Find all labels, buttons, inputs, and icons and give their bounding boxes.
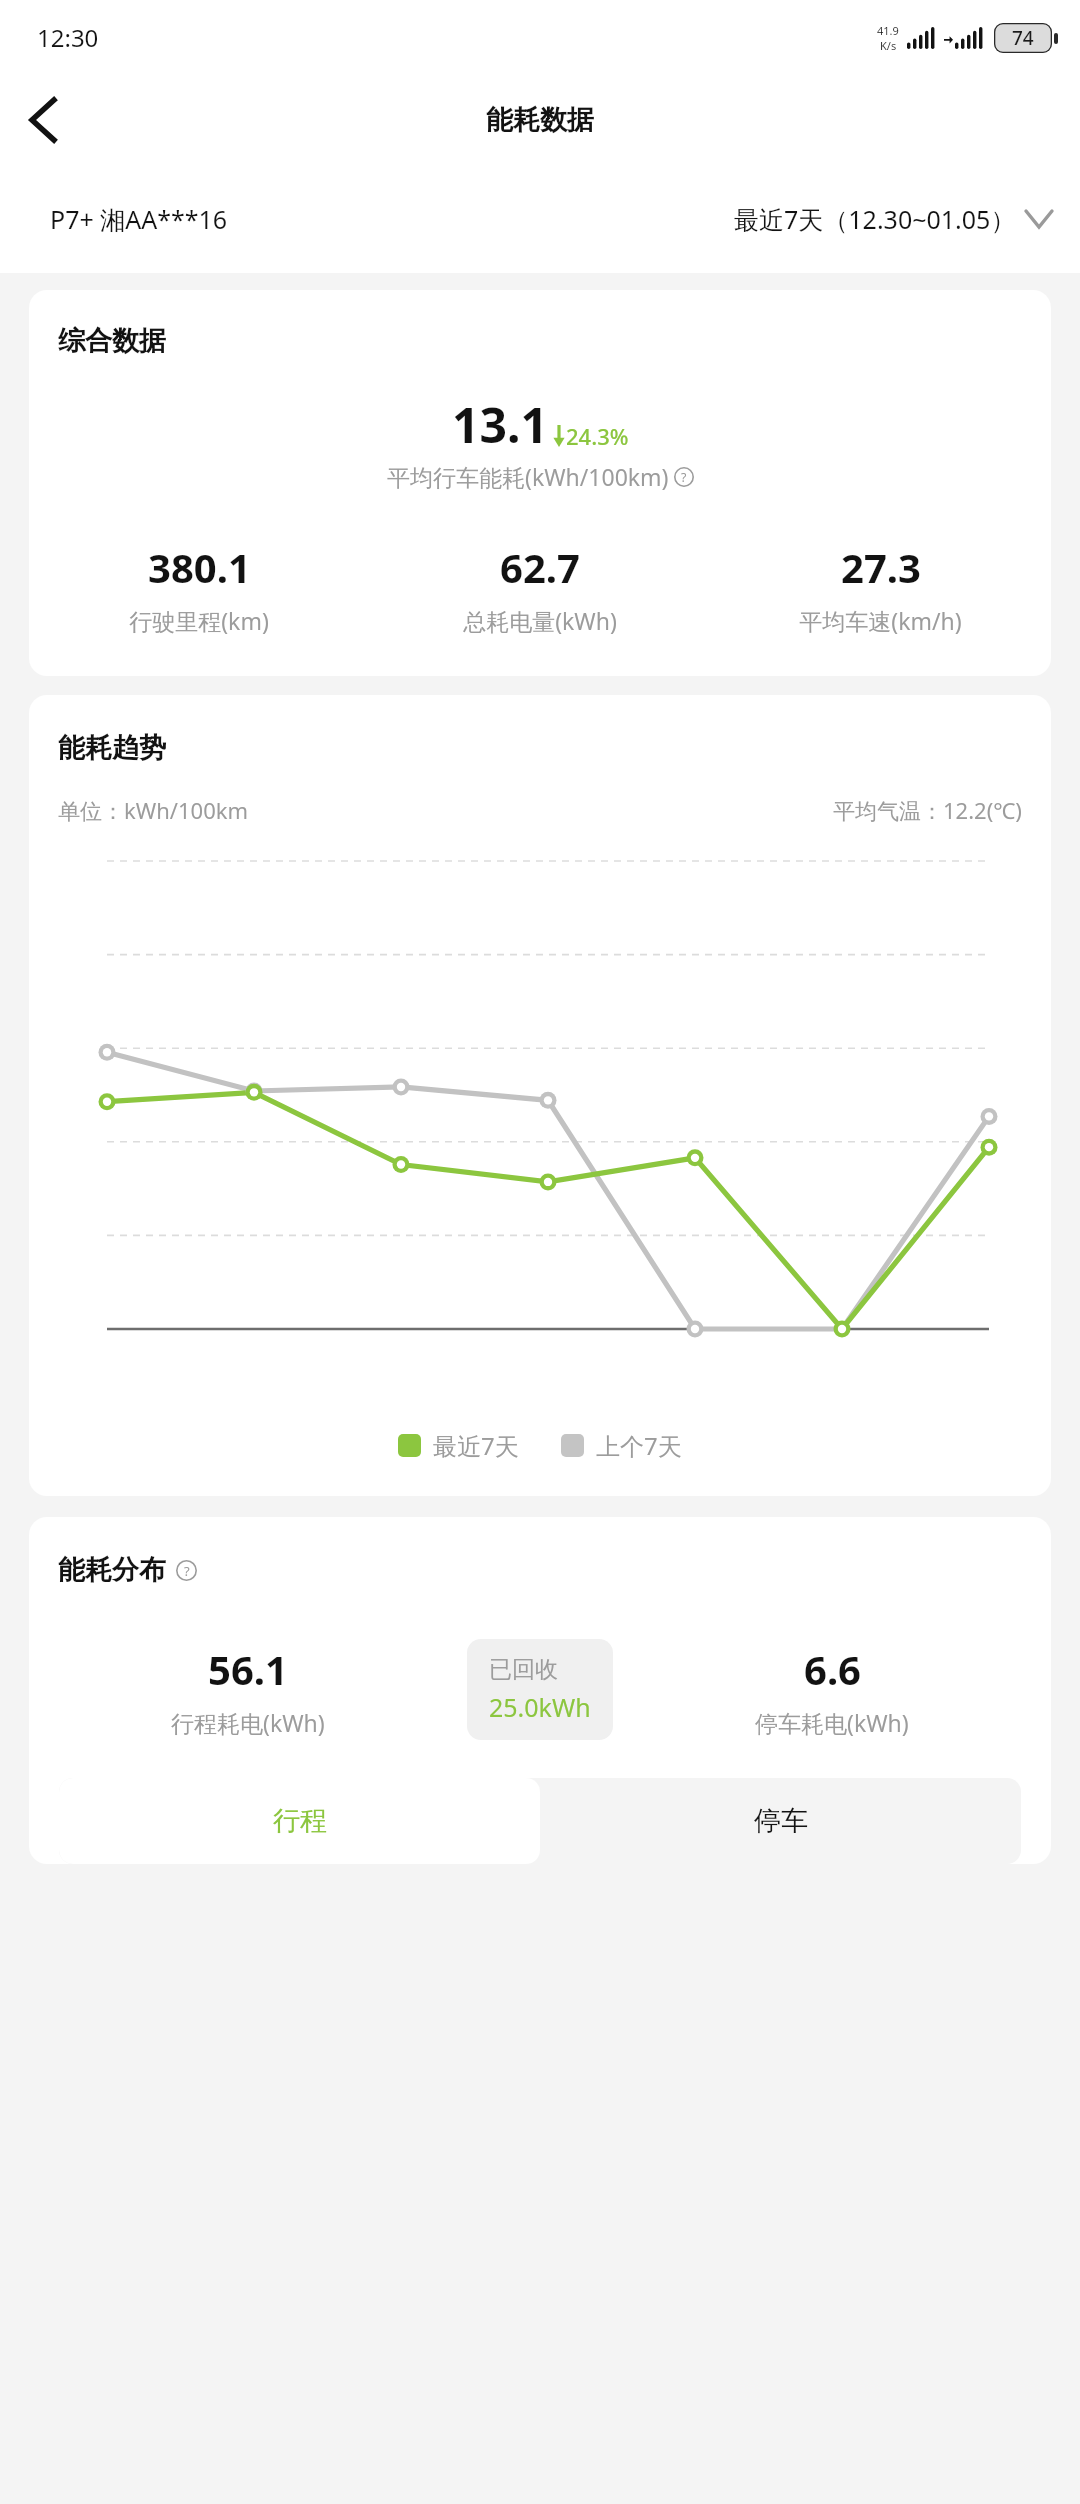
staticText: 平均气温：12.2(℃) — [833, 795, 1022, 825]
staticText: 平均车速(km/h) — [799, 605, 962, 636]
staticText: 平均行车能耗(kWh/100km) — [387, 461, 669, 492]
staticText: ? — [681, 469, 687, 486]
button[interactable]: 行程 — [59, 1778, 540, 1864]
staticText: 行程耗电(kWh) — [171, 1707, 325, 1738]
staticText: 最近7天（12.30~01.05） — [734, 202, 1016, 236]
staticText: 12:30 — [37, 21, 99, 54]
button[interactable]: 上个7天 — [561, 1429, 682, 1462]
staticText: 62.7 — [500, 540, 580, 594]
staticText: 停车 — [754, 1804, 808, 1838]
staticText: 总耗电量(kWh) — [463, 605, 617, 636]
staticText: 56.1 — [208, 1642, 288, 1696]
button[interactable]: 最近7天（12.30~01.05） — [734, 202, 1052, 236]
button[interactable]: 停车 — [540, 1778, 1021, 1864]
staticText: ? — [184, 1562, 190, 1580]
staticText: 27.3 — [841, 540, 921, 594]
staticText: K/s — [880, 38, 897, 53]
staticText: 6.6 — [804, 1642, 861, 1696]
staticText: 单位：kWh/100km — [58, 795, 249, 825]
staticText: 13.1 — [452, 392, 548, 457]
staticText: 24.3% — [566, 421, 629, 451]
button[interactable]: Back — [0, 77, 86, 163]
staticText: 能耗数据 — [486, 103, 594, 137]
staticText: 综合数据 — [58, 324, 166, 358]
staticText: 25.0kWh — [489, 1690, 591, 1724]
staticText: 41.9 — [877, 23, 899, 38]
staticText: 74 — [1012, 25, 1034, 51]
staticText: 已回收 — [489, 1655, 558, 1684]
staticText: 行驶里程(km) — [129, 605, 269, 636]
staticText: 行程 — [273, 1804, 327, 1838]
staticText: 最近7天 — [433, 1429, 519, 1462]
staticText: 380.1 — [148, 540, 251, 594]
staticText: 上个7天 — [596, 1429, 682, 1462]
button[interactable]: P7+ 湘AA***16 — [50, 202, 228, 236]
staticText: 能耗分布 — [58, 1553, 166, 1587]
button[interactable]: 最近7天 — [398, 1429, 519, 1462]
staticText: 能耗趋势 — [58, 731, 166, 765]
staticText: 停车耗电(kWh) — [755, 1707, 909, 1738]
